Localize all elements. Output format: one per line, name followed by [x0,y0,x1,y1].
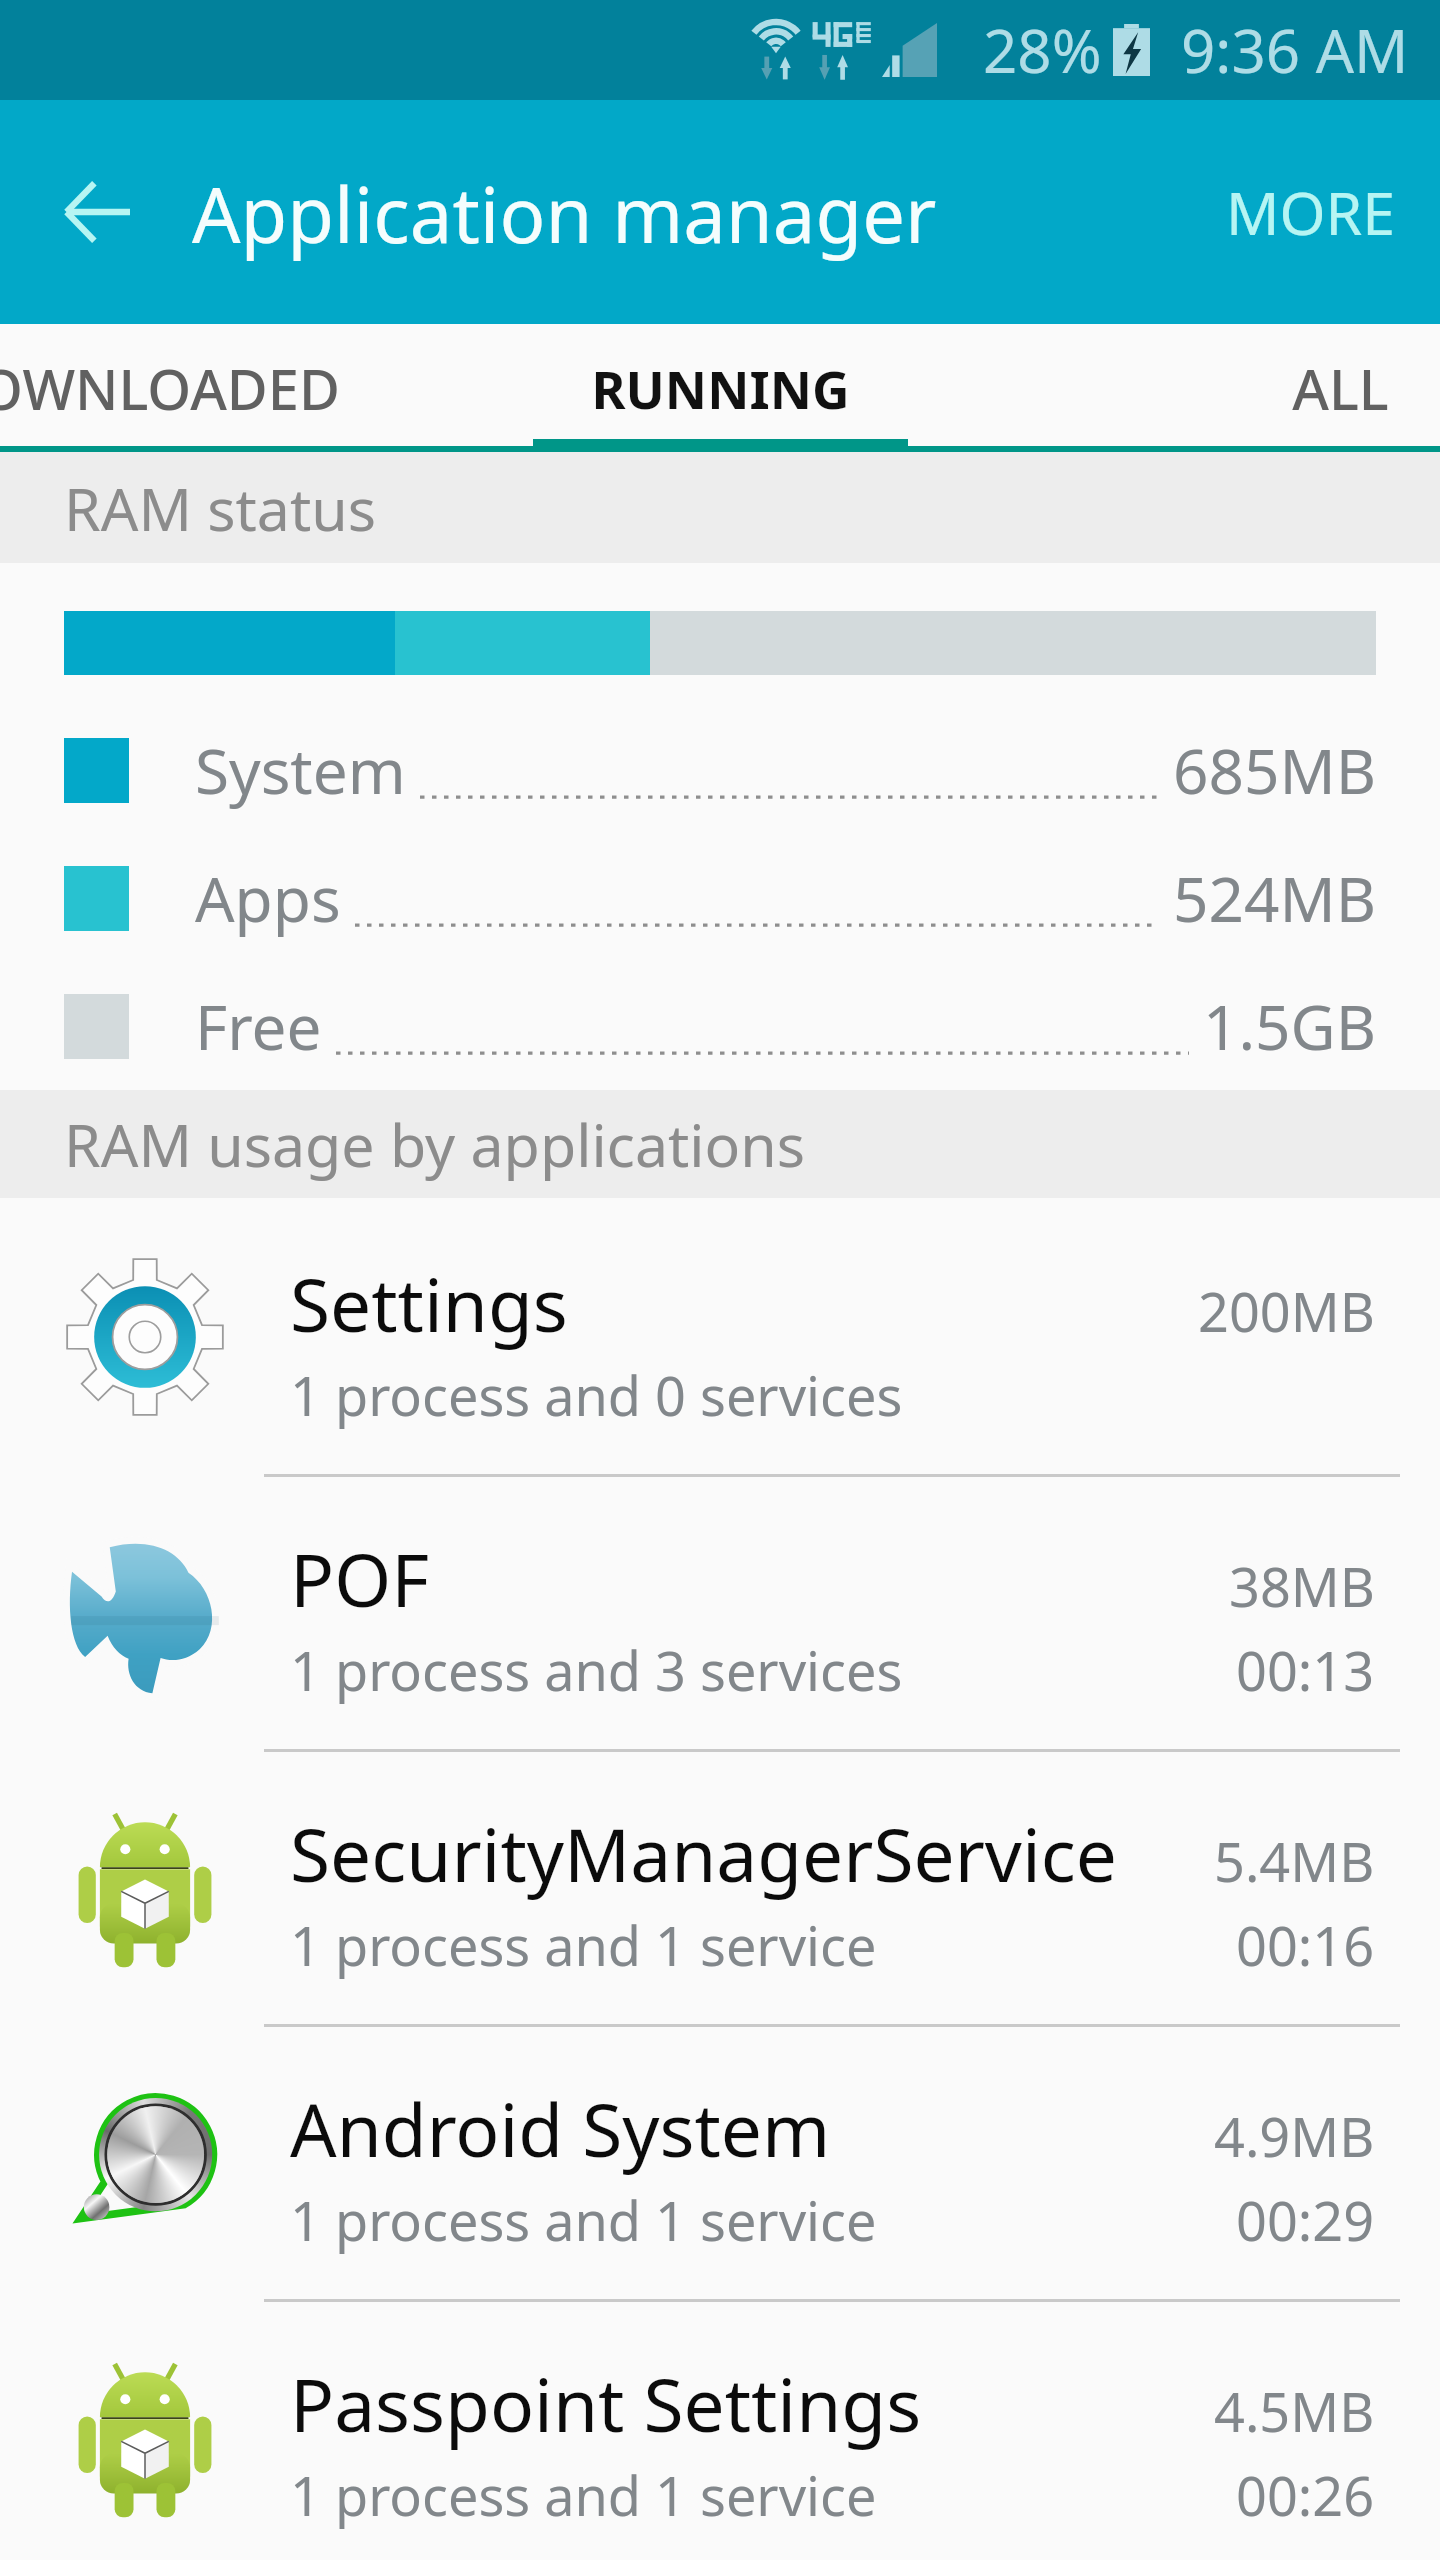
button[interactable]: Back [33,148,161,276]
button[interactable]: DOWNLOADED [0,324,434,452]
staticText: 1 process and 0 services [290,1358,903,1432]
staticText: MORE [1226,172,1396,252]
staticText: 00:26 [1236,2458,1375,2532]
staticText: Application manager [192,162,937,266]
staticText: 4.5MB [1214,2374,1375,2448]
staticText: Free [195,984,322,1068]
staticText: System [195,728,406,812]
staticText: Apps [195,856,341,940]
staticText: 00:29 [1236,2183,1375,2257]
button[interactable]: ALL [1045,324,1440,452]
staticText: 9:36 AM [1181,9,1409,91]
staticText: Android System [290,2079,831,2178]
staticText: RAM usage by applications [64,1104,805,1184]
staticText: 5.4MB [1214,1824,1375,1898]
staticText: 685MB [1173,728,1376,812]
staticText: 524MB [1173,856,1376,940]
button[interactable]: Android System [0,2027,1440,2302]
staticText: 38MB [1229,1549,1375,1623]
staticText: Passpoint Settings [290,2354,922,2453]
button[interactable]: MORE [1176,124,1440,300]
staticText: POF [290,1529,430,1628]
button[interactable]: POF [0,1477,1440,1752]
staticText: 4.9MB [1214,2099,1375,2173]
staticText: SecurityManagerService [290,1804,1117,1903]
staticText: 1 process and 1 service [290,2183,877,2257]
staticText: 1 process and 1 service [290,2458,877,2532]
staticText: 1 process and 1 service [290,1908,877,1982]
staticText: 00:16 [1236,1908,1375,1982]
button[interactable]: Passpoint Settings [0,2302,1440,2560]
staticText: DOWNLOADED [0,350,340,426]
staticText: 200MB [1198,1274,1375,1348]
staticText: 00:13 [1236,1633,1375,1707]
staticText: 1.5GB [1203,984,1376,1068]
staticText: RAM status [64,468,376,548]
staticText: Settings [290,1254,568,1353]
staticText: RUNNING [591,353,850,424]
button[interactable]: Settings [0,1202,1440,1477]
button[interactable]: RUNNING [425,324,1015,452]
staticText: 28% [983,9,1102,91]
staticText: 1 process and 3 services [290,1633,903,1707]
staticText: ALL [1292,350,1389,426]
button[interactable]: SecurityManagerService [0,1752,1440,2027]
